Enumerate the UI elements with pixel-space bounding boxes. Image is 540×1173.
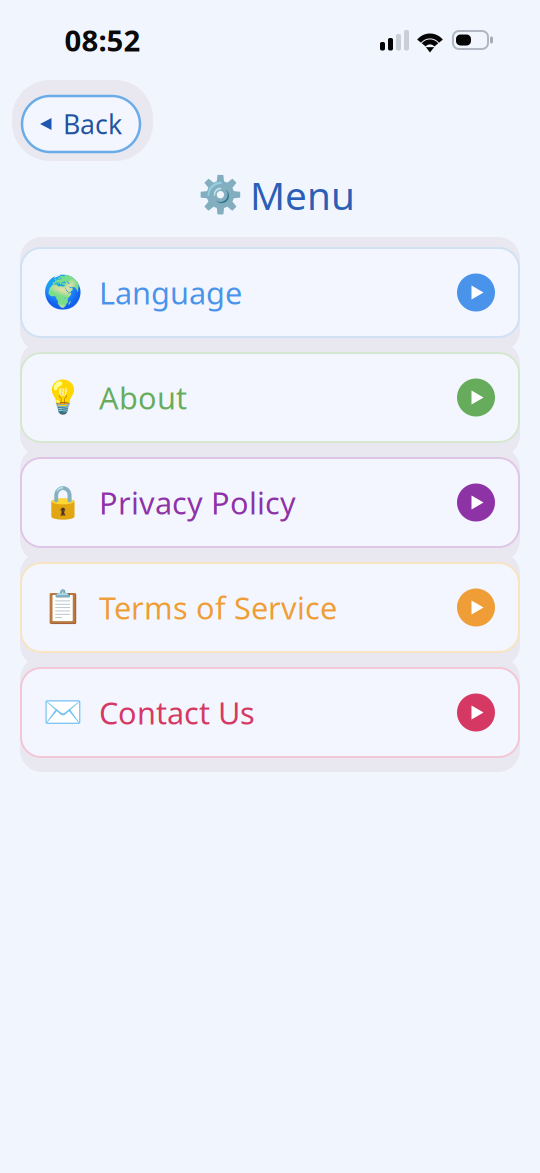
staticText: ✉️ (43, 694, 83, 731)
staticText: 🔒 (43, 484, 83, 521)
button[interactable]: ✉️ (21, 668, 519, 757)
staticText: Menu (250, 169, 355, 221)
staticText: Contact Us (99, 692, 255, 733)
button[interactable]: 🌍 (21, 248, 519, 337)
staticText: 💡 (43, 379, 83, 416)
staticText: Terms of Service (99, 587, 337, 628)
staticText: 08:52 (64, 20, 140, 59)
staticText: About (99, 377, 187, 418)
staticText: Back (63, 106, 122, 142)
button[interactable]: 💡 (21, 353, 519, 442)
staticText: Language (99, 272, 242, 313)
staticText: Privacy Policy (99, 482, 296, 523)
staticText: 🌍 (43, 274, 83, 311)
button[interactable]: 📋 (21, 563, 519, 652)
staticText: 📋 (43, 589, 83, 626)
button[interactable]: Back (22, 96, 140, 152)
staticText: ⚙️ (197, 174, 242, 215)
button[interactable]: 🔒 (21, 458, 519, 547)
